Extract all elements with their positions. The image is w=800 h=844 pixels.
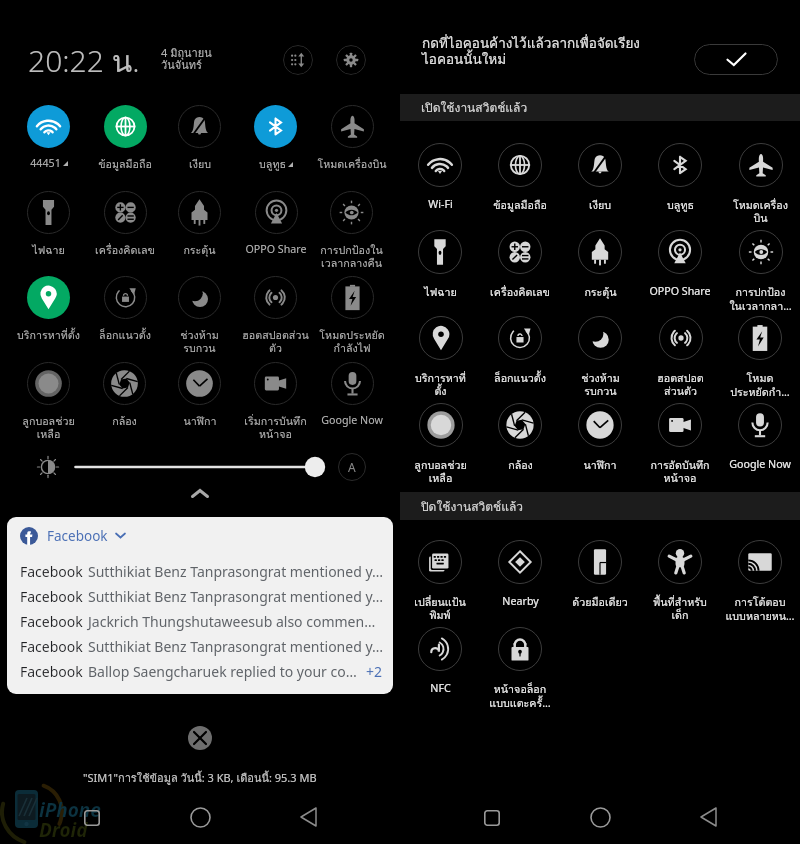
button[interactable]: Wi-Fi xyxy=(400,143,480,225)
button[interactable]: บลูทูธ xyxy=(238,103,313,183)
staticText: NFC xyxy=(430,681,451,696)
button[interactable]: Nearby xyxy=(480,540,560,622)
button[interactable]: โหมดประหยัด กำลังไฟ xyxy=(314,274,389,354)
button[interactable]: การโต้ตอบ แบบหลายหน… xyxy=(720,540,800,622)
staticText: Facebook xyxy=(47,527,108,545)
button[interactable]: ฮอตสปอต ส่วนตัว xyxy=(640,316,720,398)
button[interactable]: ล็อกแนวตั้ง xyxy=(87,274,162,354)
button[interactable]: Recent apps xyxy=(484,810,500,826)
staticText: เครื่องคิดเลข xyxy=(490,284,550,301)
staticText: โหมด ประหยัดกำ… xyxy=(730,370,790,398)
button[interactable]: ฮอตสปอตส่วน ตัว xyxy=(238,274,313,354)
button[interactable]: พื้นที่สำหรับ เด็ก xyxy=(640,540,720,622)
button[interactable]: Done xyxy=(694,44,778,75)
button[interactable]: ลูกบอลช่วย เหลือ xyxy=(400,403,480,485)
button[interactable]: OPPO Share xyxy=(640,230,720,312)
staticText: OPPO Share xyxy=(245,242,307,257)
button[interactable]: Home xyxy=(190,807,211,828)
staticText: กระตุ้น xyxy=(183,242,216,259)
button[interactable]: ข้อมูลมือถือ xyxy=(480,143,560,225)
button[interactable]: Google Now xyxy=(720,403,800,485)
staticText: Jackrich Thungshutaweesub also commen… xyxy=(88,612,383,631)
button[interactable]: โหมดเครื่อง บิน xyxy=(720,143,800,225)
button[interactable]: ช่วงห้าม รบกวน xyxy=(162,274,237,354)
button[interactable]: ข้อมูลมือถือ xyxy=(87,103,162,183)
button[interactable]: บลูทูธ xyxy=(640,143,720,225)
button[interactable] xyxy=(73,452,326,482)
staticText: Facebook xyxy=(20,562,83,581)
button[interactable]: ไฟฉาย xyxy=(11,189,86,269)
staticText: Google Now xyxy=(321,413,383,428)
button[interactable]: Back xyxy=(300,807,317,827)
staticText: ช่วงห้าม รบกวน xyxy=(581,370,620,398)
button[interactable]: กล้อง xyxy=(480,403,560,485)
staticText: Google Now xyxy=(729,457,791,472)
button[interactable]: Settings xyxy=(336,45,366,75)
button[interactable]: เงียบ xyxy=(560,143,640,225)
button[interactable]: Expand xyxy=(184,482,216,504)
button[interactable]: OPPO Share xyxy=(238,189,313,269)
staticText: ช่วงห้าม รบกวน xyxy=(180,327,219,354)
button[interactable]: บริการหาที่ ตั้ง xyxy=(400,316,480,398)
button[interactable]: Facebook xyxy=(20,634,383,659)
button[interactable]: เปลี่ยนแป้น พิมพ์ xyxy=(400,540,480,622)
staticText: ฮอตสปอตส่วน ตัว xyxy=(242,327,309,354)
button[interactable]: การปกป้อง ในเวลากลา… xyxy=(720,230,800,312)
button[interactable]: Google Now xyxy=(314,360,389,440)
button[interactable]: เริ่มการบันทึก หน้าจอ xyxy=(238,360,313,440)
button[interactable]: หน้าจอล็อก แบบแตะครั้… xyxy=(480,627,560,709)
button[interactable]: Facebook xyxy=(20,559,383,584)
staticText: "SIM1"การใช้ข้อมูล วันนี้: 3 KB, เดือนนี… xyxy=(83,769,317,786)
staticText: ลูกบอลช่วย เหลือ xyxy=(22,413,75,440)
button[interactable]: นาฬิกา xyxy=(162,360,237,440)
staticText: กดที่ไอคอนค้างไว้แล้วลากเพื่อจัดเรียง ไอ… xyxy=(422,32,640,70)
button[interactable]: Auto brightness xyxy=(337,452,367,482)
staticText: โหมดเครื่องบิน xyxy=(317,156,387,173)
button[interactable]: โหมด ประหยัดกำ… xyxy=(720,316,800,398)
staticText: เปลี่ยนแป้น พิมพ์ xyxy=(414,594,466,622)
staticText: บริการหาที่ ตั้ง xyxy=(415,370,466,398)
staticText: กระตุ้น xyxy=(584,284,617,301)
staticText: การโต้ตอบ แบบหลายหน… xyxy=(725,594,795,622)
button[interactable]: 44451 xyxy=(11,103,86,183)
button[interactable]: เครื่องคิดเลข xyxy=(87,189,162,269)
button[interactable]: Back xyxy=(700,807,717,827)
button[interactable]: เครื่องคิดเลข xyxy=(480,230,560,312)
button[interactable]: บริการหาที่ตั้ง xyxy=(11,274,86,354)
button[interactable]: Facebook xyxy=(20,609,383,634)
button[interactable]: กล้อง xyxy=(87,360,162,440)
staticText: โหมดประหยัด กำลังไฟ xyxy=(319,327,385,354)
button[interactable]: การปกป้องใน เวลากลางคืน xyxy=(314,189,389,269)
staticText: Sutthikiat Benz Tanprasongrat mentioned … xyxy=(88,587,383,606)
button[interactable]: การอัดบันทึก หน้าจอ xyxy=(640,403,720,485)
button[interactable]: Facebook xyxy=(20,659,383,684)
button[interactable]: โหมดเครื่องบิน xyxy=(314,103,389,183)
staticText: เงียบ xyxy=(189,156,211,173)
staticText: เงียบ xyxy=(589,197,611,214)
staticText: ด้วยมือเดียว xyxy=(572,594,628,611)
button[interactable]: Recent apps xyxy=(84,810,100,826)
button[interactable]: ล็อกแนวตั้ง xyxy=(480,316,560,398)
button[interactable]: เงียบ xyxy=(162,103,237,183)
button[interactable]: Home xyxy=(590,807,611,828)
staticText: Facebook xyxy=(20,587,83,606)
button[interactable]: กระตุ้น xyxy=(560,230,640,312)
button[interactable]: NFC xyxy=(400,627,480,709)
button[interactable]: Facebook xyxy=(20,584,383,609)
button[interactable]: Facebook xyxy=(7,517,393,694)
staticText: Sutthikiat Benz Tanprasongrat mentioned … xyxy=(88,637,383,656)
button[interactable]: Brightness xyxy=(33,452,63,482)
button[interactable]: กระตุ้น xyxy=(162,189,237,269)
staticText: นาฬิกา xyxy=(583,457,617,474)
staticText: ปิดใช้งานสวิตช์แล้ว xyxy=(421,497,524,516)
button[interactable]: ไฟฉาย xyxy=(400,230,480,312)
button[interactable]: นาฬิกา xyxy=(560,403,640,485)
staticText: ข้อมูลมือถือ xyxy=(98,156,152,173)
button[interactable]: ด้วยมือเดียว xyxy=(560,540,640,622)
button[interactable]: ช่วงห้าม รบกวน xyxy=(560,316,640,398)
button[interactable]: Reorder tiles xyxy=(283,45,313,75)
button[interactable]: ลูกบอลช่วย เหลือ xyxy=(11,360,86,440)
button[interactable]: Clear all notifications xyxy=(188,726,212,750)
staticText: กล้อง xyxy=(508,457,533,474)
staticText: ล็อกแนวตั้ง xyxy=(99,327,151,344)
